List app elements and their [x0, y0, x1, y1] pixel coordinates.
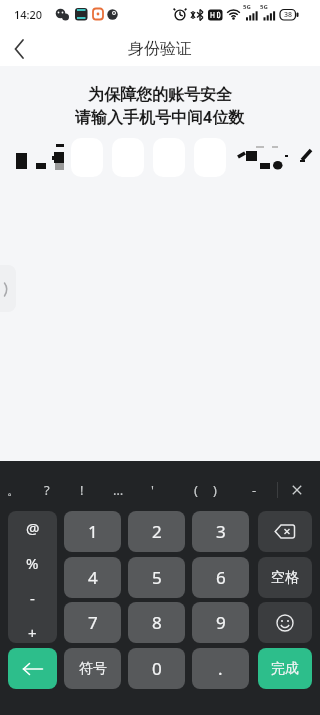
staticText: 3 — [216, 520, 226, 543]
button[interactable]: . — [192, 648, 249, 689]
staticText: ? — [44, 481, 50, 499]
staticText: @ — [26, 518, 40, 538]
button[interactable]: 4 — [64, 557, 121, 598]
staticText: 9 — [216, 611, 226, 634]
staticText: ( — [194, 481, 198, 499]
staticText: ' — [151, 481, 154, 499]
button[interactable] — [8, 648, 57, 689]
staticText: 0 — [152, 657, 162, 680]
staticText: 2 — [152, 520, 162, 543]
staticText: % — [26, 553, 39, 573]
button[interactable] — [258, 602, 312, 643]
staticText: 6 — [216, 566, 226, 589]
staticText: - — [252, 481, 257, 499]
button[interactable]: 6 — [192, 557, 249, 598]
staticText: - — [30, 588, 35, 608]
staticText: 4 — [88, 566, 98, 589]
button[interactable]: 0 — [128, 648, 185, 689]
button[interactable]: 空格 — [258, 557, 312, 598]
staticText: . — [218, 657, 223, 680]
button[interactable]: ? — [33, 478, 61, 502]
button[interactable]: 完成 — [258, 648, 312, 689]
staticText: 符号 — [79, 660, 107, 678]
button[interactable]: 8 — [128, 602, 185, 643]
staticText: 1 — [88, 520, 98, 543]
button[interactable]: 7 — [64, 602, 121, 643]
staticText: 7 — [88, 611, 98, 634]
staticText: 38 — [284, 10, 293, 20]
staticText: 身份验证 — [128, 39, 192, 59]
staticText: 8 — [152, 611, 162, 634]
staticText: … — [113, 481, 124, 499]
button[interactable] — [4, 34, 34, 64]
button[interactable]: … — [104, 478, 132, 502]
button[interactable]: @ — [8, 511, 57, 643]
staticText: 为保障您的账号安全 — [88, 85, 232, 105]
staticText: 完成 — [271, 660, 299, 678]
button[interactable]: 3 — [192, 511, 249, 552]
button[interactable]: 5 — [128, 557, 185, 598]
button[interactable] — [258, 511, 312, 552]
staticText: 5G — [243, 3, 251, 11]
button[interactable]: 2 — [128, 511, 185, 552]
staticText: 5G — [260, 3, 268, 11]
button[interactable]: ! — [68, 478, 96, 502]
button[interactable]: 。 — [0, 478, 27, 502]
button[interactable]: ) — [201, 478, 229, 502]
button[interactable]: ' — [138, 478, 166, 502]
staticText: ) — [213, 481, 217, 499]
staticText: 请输入手机号中间4位数 — [75, 106, 245, 126]
staticText: ! — [80, 481, 84, 499]
button[interactable]: 9 — [192, 602, 249, 643]
button[interactable]: 符号 — [64, 648, 121, 689]
staticText: + — [28, 623, 37, 643]
staticText: 5 — [152, 566, 162, 589]
staticText: 空格 — [271, 569, 299, 587]
button[interactable]: ( — [182, 478, 210, 502]
button[interactable] — [284, 478, 310, 502]
staticText: 。 — [7, 482, 20, 498]
staticText: 14:20 — [14, 7, 43, 22]
button[interactable]: - — [240, 478, 268, 502]
button[interactable]: 1 — [64, 511, 121, 552]
